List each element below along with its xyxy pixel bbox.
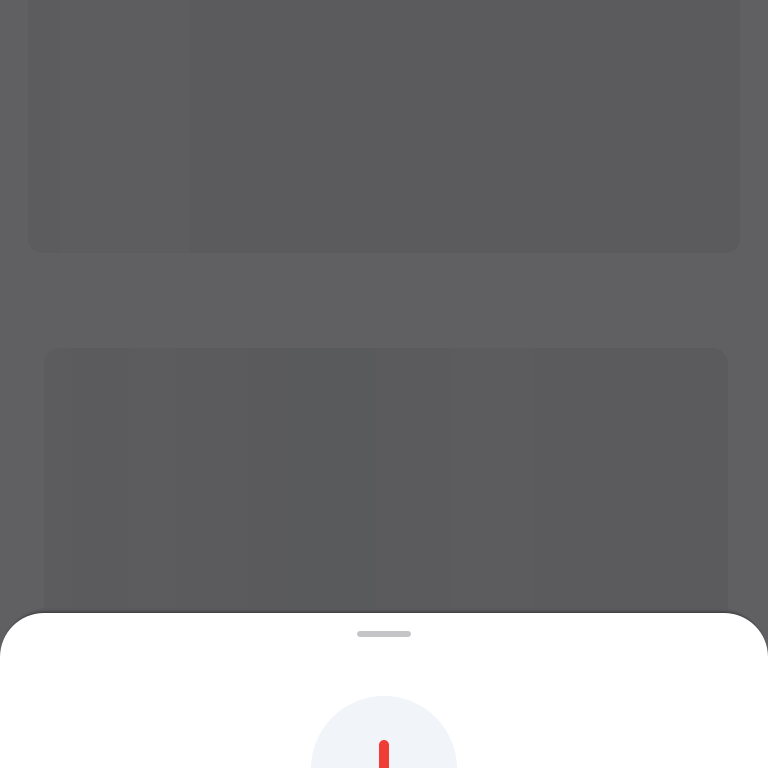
button[interactable]: Drag to resize sheet — [357, 631, 411, 637]
